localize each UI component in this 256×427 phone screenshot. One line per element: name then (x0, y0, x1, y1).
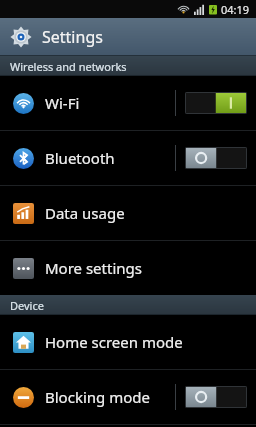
button[interactable]: Settings (0, 18, 256, 56)
staticText: Blocking mode (45, 387, 150, 407)
button[interactable]: More settings (0, 241, 256, 295)
staticText: Home screen mode (45, 332, 183, 352)
staticText: Wireless and networks (10, 59, 127, 74)
button[interactable]: Home screen mode (0, 315, 256, 369)
button[interactable]: On (185, 92, 247, 114)
staticText: Wi-Fi (45, 93, 80, 113)
staticText: Bluetooth (45, 148, 115, 168)
staticText: Data usage (45, 203, 125, 223)
button[interactable]: Off (185, 386, 247, 408)
button[interactable]: Blocking mode (0, 370, 256, 424)
other: Settings (10, 26, 32, 48)
button[interactable]: Bluetooth (0, 131, 256, 185)
button[interactable]: Data usage (0, 186, 256, 240)
staticText: Settings (42, 26, 103, 48)
staticText: More settings (45, 258, 142, 278)
staticText: Device (10, 298, 44, 313)
staticText: 04:19 (221, 2, 250, 17)
button[interactable]: Off (185, 147, 247, 169)
button[interactable]: Wi-Fi (0, 76, 256, 130)
